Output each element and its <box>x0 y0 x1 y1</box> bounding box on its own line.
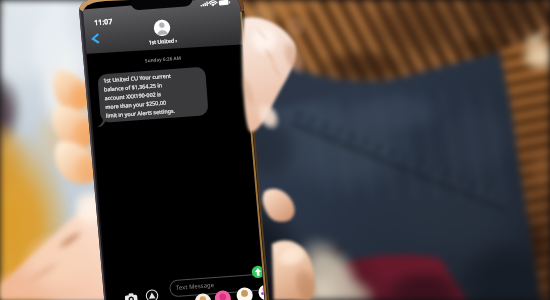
button[interactable]: Messages conversation with 1st United <box>0 0 550 300</box>
